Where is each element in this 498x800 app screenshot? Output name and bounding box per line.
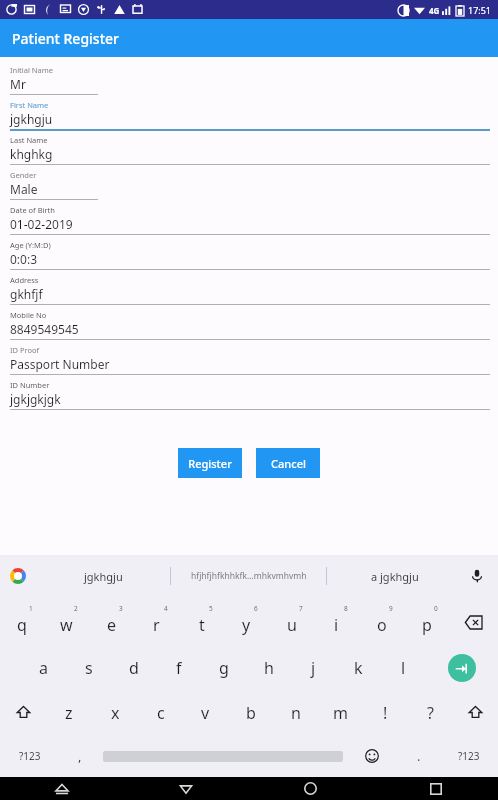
button[interactable]: Address — [10, 275, 498, 310]
staticText: l — [401, 657, 406, 679]
button[interactable]: hfjhfjhfkhhkfk…mhkvmhvmh — [171, 555, 326, 597]
staticText: k — [354, 657, 363, 679]
button[interactable]: j — [291, 645, 336, 690]
staticText: u — [287, 614, 297, 636]
button[interactable]: g — [201, 645, 246, 690]
staticText: g — [219, 657, 229, 679]
button[interactable]: c — [138, 690, 183, 735]
button[interactable]: Google — [8, 566, 28, 586]
staticText: First Name — [10, 100, 49, 110]
button[interactable]: Keyboard hide — [0, 777, 124, 800]
staticText: o — [377, 614, 387, 636]
staticText: i — [334, 614, 339, 636]
staticText: j — [311, 657, 316, 679]
button[interactable]: ID Proof — [10, 345, 498, 380]
button[interactable]: h — [246, 645, 291, 690]
button[interactable]: x — [92, 690, 138, 735]
staticText: ?123 — [458, 749, 480, 763]
button[interactable]: Home — [248, 777, 373, 800]
button[interactable]: ?123 — [0, 735, 59, 777]
button[interactable]: l — [381, 645, 426, 690]
staticText: Cancel — [271, 456, 306, 471]
staticText: 9 — [389, 604, 393, 613]
button[interactable]: Last Name — [10, 135, 498, 170]
button[interactable]: Voice input — [466, 565, 488, 587]
button[interactable]: Date of Birth — [10, 205, 498, 240]
staticText: Last Name — [10, 135, 48, 145]
button[interactable]: 4 — [134, 600, 179, 645]
button[interactable]: d — [111, 645, 156, 690]
staticText: ID Proof — [10, 345, 40, 355]
button[interactable]: k — [336, 645, 381, 690]
button[interactable]: 6 — [224, 600, 269, 645]
button[interactable]: Mobile No — [10, 310, 498, 345]
button[interactable]: First Name — [10, 100, 498, 135]
staticText: Patient Register — [12, 29, 119, 48]
button[interactable]: Recents — [373, 777, 498, 800]
button[interactable]: 3 — [89, 600, 134, 645]
button[interactable]: m — [318, 690, 363, 735]
staticText: Passport Number — [10, 356, 110, 372]
staticText: 4 — [164, 604, 168, 613]
button[interactable]: Enter — [426, 645, 498, 690]
staticText: Date of Birth — [10, 205, 55, 215]
button[interactable]: Register — [178, 448, 242, 478]
button[interactable]: n — [273, 690, 318, 735]
staticText: 17:51 — [468, 4, 492, 16]
button[interactable]: f — [156, 645, 201, 690]
staticText: 2 — [74, 604, 78, 613]
button[interactable]: . — [398, 735, 440, 777]
staticText: c — [157, 702, 165, 724]
button[interactable]: Shift — [453, 690, 498, 735]
staticText: 0:0:3 — [10, 251, 38, 267]
staticText: e — [107, 614, 117, 636]
staticText: jgkhgju — [10, 111, 53, 127]
button[interactable]: Back — [124, 777, 248, 800]
button[interactable]: 9 — [359, 600, 404, 645]
button[interactable]: ID Number — [10, 380, 498, 415]
button[interactable]: ! — [363, 690, 408, 735]
button[interactable]: Patient Register — [0, 19, 498, 57]
staticText: Age (Y:M:D) — [10, 240, 51, 250]
staticText: a — [39, 657, 48, 679]
staticText: 7 — [299, 604, 303, 613]
staticText: khghkg — [10, 146, 53, 162]
button[interactable]: jgkhgju — [36, 555, 170, 597]
button[interactable]: v — [183, 690, 228, 735]
button[interactable]: Cancel — [256, 448, 320, 478]
button[interactable]: 1 — [0, 600, 44, 645]
staticText: , — [78, 747, 82, 765]
staticText: Mobile No — [10, 310, 47, 320]
button[interactable]: Age (Y:M:D) — [10, 240, 498, 275]
button[interactable]: Backspace — [449, 600, 498, 645]
button[interactable]: a — [21, 645, 66, 690]
button[interactable]: z — [46, 690, 92, 735]
staticText: h — [264, 657, 274, 679]
staticText: Initial Name — [10, 65, 53, 75]
button[interactable]: Gender — [10, 170, 498, 205]
staticText: f — [176, 657, 182, 679]
button[interactable]: Initial Name — [10, 65, 498, 100]
button[interactable]: ?123 — [440, 735, 498, 777]
button[interactable]: a jgkhgju — [327, 555, 462, 597]
staticText: s — [85, 657, 93, 679]
staticText: Male — [10, 181, 38, 197]
button[interactable]: Shift — [0, 690, 46, 735]
button[interactable]: 8 — [314, 600, 359, 645]
staticText: ID Number — [10, 380, 50, 390]
staticText: Mr — [10, 76, 26, 92]
staticText: z — [65, 702, 73, 724]
button[interactable]: Emoji — [345, 735, 398, 777]
staticText: 6 — [254, 604, 258, 613]
button[interactable]: 5 — [179, 600, 224, 645]
button[interactable]: 2 — [44, 600, 89, 645]
button[interactable]: 0 — [404, 600, 449, 645]
staticText: . — [417, 747, 421, 765]
button[interactable]: s — [66, 645, 111, 690]
button[interactable]: Space — [101, 735, 345, 777]
button[interactable]: b — [228, 690, 273, 735]
button[interactable]: , — [59, 735, 101, 777]
staticText: 8849549545 — [10, 321, 79, 337]
button[interactable]: ? — [408, 690, 453, 735]
button[interactable]: 7 — [269, 600, 314, 645]
